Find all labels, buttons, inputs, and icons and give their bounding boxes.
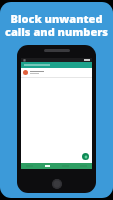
button[interactable] (21, 62, 92, 68)
button[interactable]: More (74, 163, 92, 169)
button[interactable]: Recent (38, 163, 56, 169)
button[interactable] (21, 68, 92, 77)
button[interactable]: Home (52, 179, 62, 189)
button[interactable]: Blocked (21, 163, 38, 169)
staticText: Block unwanted calls and numbers (4, 11, 109, 39)
button[interactable]: Contacts (56, 163, 74, 169)
button[interactable]: Add number to block list (82, 153, 89, 160)
